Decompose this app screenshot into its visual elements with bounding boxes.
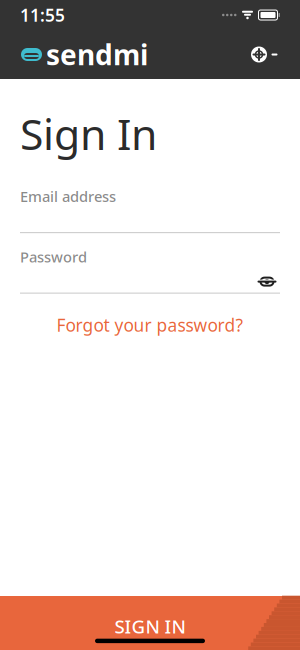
staticText: SIGN IN bbox=[114, 614, 185, 639]
button[interactable]: Show password bbox=[254, 271, 280, 293]
button[interactable]: Forgot your password? bbox=[20, 306, 280, 345]
staticText: sendmi bbox=[46, 36, 148, 73]
staticText: 11:55 bbox=[20, 3, 65, 26]
button[interactable]: SIGN IN bbox=[0, 596, 300, 650]
staticText: Sign In bbox=[20, 105, 157, 162]
staticText: Password bbox=[20, 247, 87, 267]
button[interactable]: Change language bbox=[249, 40, 280, 68]
staticText: Forgot your password? bbox=[56, 314, 243, 337]
staticText: Email address bbox=[20, 187, 116, 206]
